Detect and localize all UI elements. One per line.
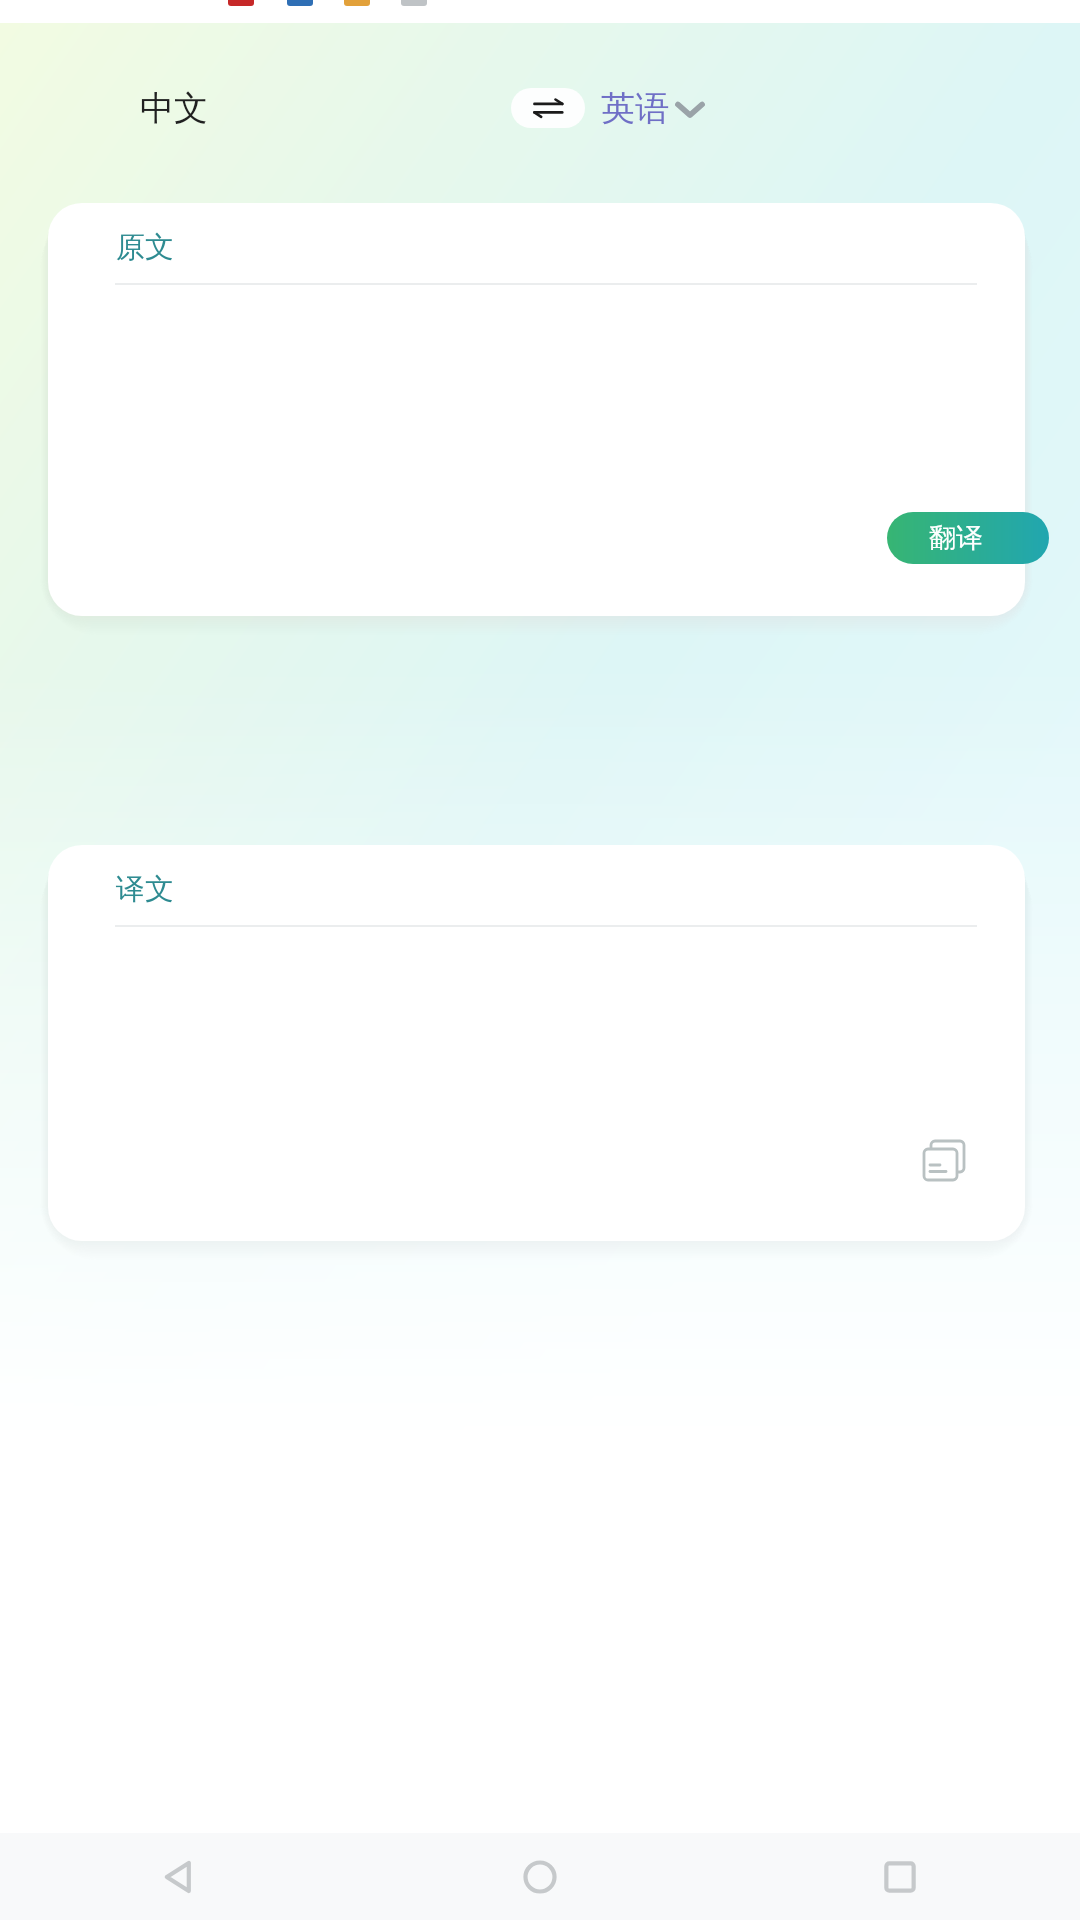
button[interactable]: Swap languages [511, 88, 585, 128]
button[interactable]: 中文 [120, 79, 228, 138]
staticText: 原文 [116, 229, 174, 266]
staticText: 中文 [140, 87, 208, 130]
button[interactable]: Home [360, 1833, 720, 1920]
staticText: 译文 [116, 871, 174, 908]
button[interactable]: 译文 [48, 845, 1025, 1241]
staticText: 翻译 [929, 521, 983, 555]
button[interactable]: 英语 [585, 79, 725, 138]
button[interactable]: 翻译 [887, 512, 1049, 564]
staticText: 英语 [601, 87, 669, 130]
button[interactable]: 原文 [48, 203, 1025, 616]
button[interactable]: Recents [720, 1833, 1080, 1920]
button[interactable]: Copy translation [907, 1123, 983, 1199]
button[interactable]: Back [0, 1833, 360, 1920]
